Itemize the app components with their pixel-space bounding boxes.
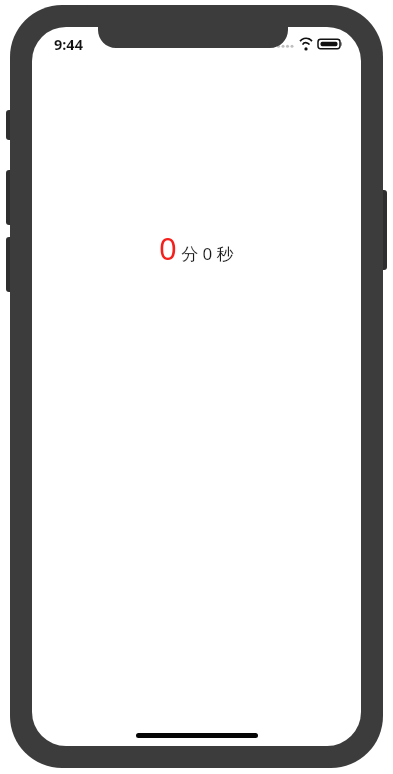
staticText: 9:44 <box>54 34 83 54</box>
button[interactable]: 0 分 0 秒 <box>147 223 246 273</box>
staticText: 0 分 0 秒 <box>159 227 234 269</box>
